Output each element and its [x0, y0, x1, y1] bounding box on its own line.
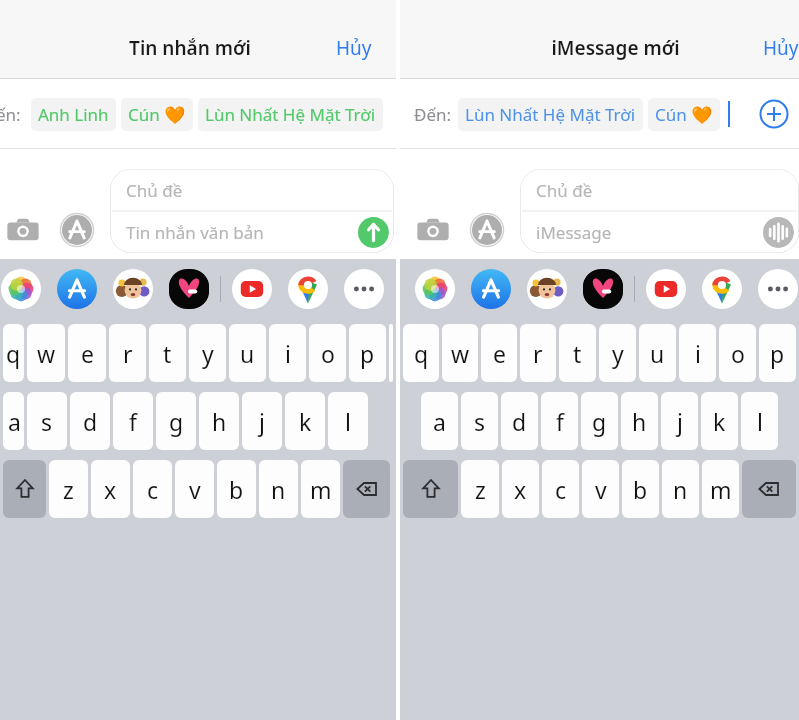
button[interactable]: r — [109, 324, 146, 382]
staticText: Tin nhắn mới — [129, 35, 251, 61]
button[interactable]: Cún 🧡 — [648, 98, 720, 131]
button[interactable]: App — [287, 268, 329, 310]
button[interactable]: e — [481, 324, 517, 382]
button[interactable]: Anh Linh — [31, 98, 116, 131]
staticText: j — [677, 406, 683, 437]
button[interactable]: t — [149, 324, 186, 382]
button[interactable]: t — [559, 324, 596, 382]
button[interactable]: Hủy — [757, 31, 799, 65]
button[interactable]: Chủ đề — [520, 169, 799, 253]
button[interactable]: i — [679, 324, 716, 382]
button[interactable]: App — [168, 268, 210, 310]
staticText: w — [37, 338, 56, 369]
button[interactable]: q — [3, 324, 24, 382]
staticText: Cún 🧡 — [655, 103, 713, 126]
button[interactable]: v — [175, 460, 214, 518]
button[interactable]: k — [701, 392, 738, 450]
button[interactable]: q — [403, 324, 439, 382]
button[interactable]: o — [309, 324, 346, 382]
button[interactable]: Camera — [410, 207, 456, 253]
button[interactable]: i — [269, 324, 306, 382]
button[interactable] — [389, 324, 393, 382]
button[interactable]: z — [49, 460, 88, 518]
button[interactable]: Send — [357, 216, 389, 248]
button[interactable]: App — [231, 268, 273, 310]
button[interactable]: e — [68, 324, 106, 382]
button[interactable]: App — [757, 268, 799, 310]
button[interactable]: m — [702, 460, 739, 518]
button[interactable]: o — [719, 324, 756, 382]
button[interactable]: Camera — [0, 207, 46, 253]
button[interactable]: s — [27, 392, 67, 450]
button[interactable]: App — [526, 268, 568, 310]
button[interactable]: a — [421, 392, 458, 450]
button[interactable]: z — [461, 460, 499, 518]
button[interactable]: g — [156, 392, 196, 450]
button[interactable]: y — [599, 324, 636, 382]
button[interactable]: Cún 🧡 — [121, 98, 193, 131]
staticText: p — [360, 338, 375, 369]
button[interactable]: Chủ đề — [110, 169, 394, 253]
button[interactable]: h — [621, 392, 658, 450]
staticText: d — [512, 406, 527, 437]
button[interactable]: g — [581, 392, 618, 450]
button[interactable]: App — [343, 268, 385, 310]
button[interactable]: Lùn Nhất Hệ Mặt Trời — [198, 98, 383, 131]
button[interactable]: App — [0, 268, 42, 310]
button[interactable]: r — [520, 324, 556, 382]
button[interactable]: s — [461, 392, 498, 450]
button[interactable]: Delete — [343, 460, 390, 518]
staticText: p — [770, 338, 785, 369]
button[interactable]: Shift — [3, 460, 46, 518]
button[interactable]: App — [701, 268, 743, 310]
button[interactable]: m — [301, 460, 340, 518]
button[interactable]: p — [759, 324, 796, 382]
button[interactable]: App — [414, 268, 456, 310]
button[interactable]: Lùn Nhất Hệ Mặt Trời — [458, 98, 643, 131]
button[interactable]: App — [112, 268, 154, 310]
button[interactable]: h — [199, 392, 239, 450]
button[interactable]: j — [661, 392, 698, 450]
button[interactable]: a — [3, 392, 24, 450]
staticText: a — [8, 406, 21, 437]
button[interactable]: Hủy — [330, 31, 378, 65]
button[interactable]: d — [70, 392, 110, 450]
button[interactable]: b — [217, 460, 256, 518]
button[interactable]: y — [189, 324, 226, 382]
button[interactable]: App Store — [54, 207, 100, 253]
button[interactable]: x — [502, 460, 539, 518]
button[interactable]: App — [470, 268, 512, 310]
button[interactable]: Add contact — [757, 97, 791, 131]
button[interactable]: App — [56, 268, 98, 310]
button[interactable]: w — [27, 324, 65, 382]
button[interactable]: App — [582, 268, 624, 310]
button[interactable]: App — [645, 268, 687, 310]
button[interactable]: v — [582, 460, 619, 518]
button[interactable]: App Store — [464, 207, 510, 253]
button[interactable]: u — [639, 324, 676, 382]
button[interactable]: w — [442, 324, 478, 382]
button[interactable]: j — [242, 392, 282, 450]
button[interactable]: c — [133, 460, 172, 518]
button[interactable]: n — [662, 460, 699, 518]
button[interactable]: c — [542, 460, 579, 518]
button[interactable]: Record audio — [762, 216, 794, 248]
button[interactable]: f — [541, 392, 578, 450]
button[interactable]: d — [501, 392, 538, 450]
staticText: d — [83, 406, 98, 437]
button[interactable]: x — [91, 460, 130, 518]
button[interactable]: l — [328, 392, 368, 450]
button[interactable]: b — [622, 460, 659, 518]
button[interactable]: n — [259, 460, 298, 518]
button[interactable]: Shift — [403, 460, 458, 518]
button[interactable]: f — [113, 392, 153, 450]
staticText: f — [556, 406, 564, 437]
button[interactable]: Delete — [742, 460, 796, 518]
staticText: w — [451, 338, 470, 369]
staticText: Anh Linh — [38, 103, 109, 126]
button[interactable]: l — [741, 392, 778, 450]
button[interactable]: p — [349, 324, 386, 382]
button[interactable]: k — [285, 392, 325, 450]
staticText: m — [710, 474, 732, 505]
button[interactable]: u — [229, 324, 266, 382]
